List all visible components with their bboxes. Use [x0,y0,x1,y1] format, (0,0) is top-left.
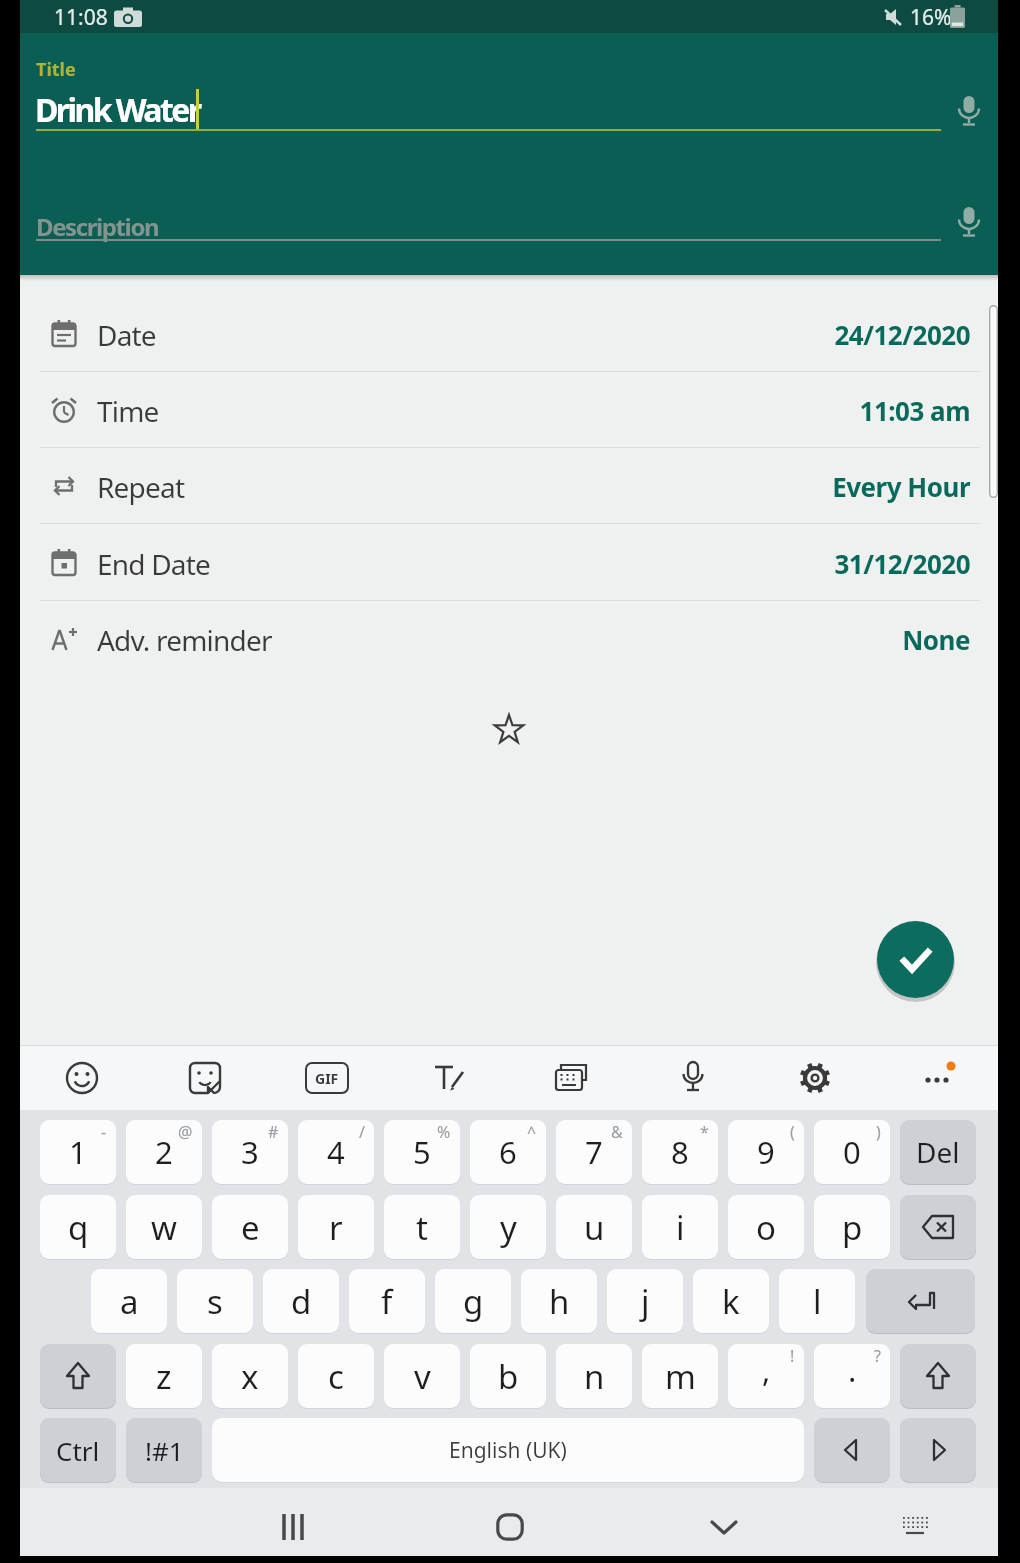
button[interactable]: !#1 [126,1418,202,1482]
staticText: ! [790,1345,795,1367]
button[interactable]: , [728,1344,804,1408]
button[interactable]: 8 [642,1120,718,1184]
button[interactable]: i [642,1195,718,1259]
button[interactable]: p [814,1195,890,1259]
button[interactable] [255,1498,335,1556]
button[interactable] [900,1195,976,1259]
button[interactable]: d [263,1269,339,1333]
staticText: 8 [671,1131,689,1173]
button[interactable] [866,1269,975,1333]
staticText: 24/12/2020 [470,317,970,352]
button[interactable]: 9 [728,1120,804,1184]
button[interactable]: 6 [470,1120,546,1184]
staticText: Time [97,392,159,430]
staticText: w [151,1205,177,1250]
button[interactable]: 4 [298,1120,374,1184]
staticText: - [101,1121,107,1143]
staticText: 6 [499,1131,517,1173]
button[interactable]: n [556,1344,632,1408]
staticText: h [549,1279,570,1324]
button[interactable] [470,1498,550,1556]
button[interactable] [684,1498,764,1556]
staticText: 2 [155,1131,173,1173]
button[interactable]: Repeat [20,448,998,524]
button[interactable]: . [814,1344,890,1408]
staticText: ^ [527,1121,537,1143]
button[interactable] [900,1418,976,1482]
button[interactable]: k [693,1269,769,1333]
button[interactable]: s [177,1269,253,1333]
button[interactable]: o [728,1195,804,1259]
button[interactable]: z [126,1344,202,1408]
button[interactable] [940,81,998,141]
staticText: End Date [97,545,211,583]
button[interactable]: e [212,1195,288,1259]
staticText: g [463,1279,484,1324]
button[interactable] [632,1046,754,1110]
staticText: c [328,1354,344,1399]
button[interactable]: Del [900,1120,976,1184]
button[interactable]: q [40,1195,116,1259]
button[interactable]: f [349,1269,425,1333]
button[interactable]: GIF [266,1046,388,1110]
button[interactable]: w [126,1195,202,1259]
button[interactable]: x [212,1344,288,1408]
staticText: j [641,1279,650,1324]
staticText: 4 [327,1131,345,1173]
staticText: a [120,1279,139,1324]
button[interactable]: b [470,1344,546,1408]
staticText: y [500,1205,517,1250]
staticText: u [584,1205,605,1250]
button[interactable]: j [607,1269,683,1333]
button[interactable] [940,193,998,251]
button[interactable]: u [556,1195,632,1259]
staticText: % [437,1121,451,1143]
button[interactable] [754,1046,876,1110]
button[interactable] [40,1344,116,1408]
button[interactable]: Ctrl [40,1418,116,1482]
button[interactable]: 0 [814,1120,890,1184]
button[interactable]: 5 [384,1120,460,1184]
button[interactable]: t [384,1195,460,1259]
staticText: m [665,1354,696,1399]
button[interactable] [814,1418,890,1482]
button[interactable] [876,1046,998,1110]
button[interactable]: End Date [20,525,998,601]
staticText: x [241,1354,259,1399]
button[interactable]: c [298,1344,374,1408]
button[interactable]: v [384,1344,460,1408]
button[interactable]: r [298,1195,374,1259]
staticText: Repeat [97,468,185,506]
staticText: d [291,1279,312,1324]
staticText: Del [916,1133,960,1171]
button[interactable] [877,921,954,998]
button[interactable] [875,1498,955,1556]
button[interactable]: g [435,1269,511,1333]
staticText: b [498,1354,519,1399]
button[interactable] [388,1046,510,1110]
button[interactable]: y [470,1195,546,1259]
staticText: 11:08 [54,3,108,32]
button[interactable]: a [91,1269,167,1333]
button[interactable]: 7 [556,1120,632,1184]
button[interactable]: Time [20,372,998,448]
staticText: ? [874,1345,881,1367]
button[interactable]: m [642,1344,718,1408]
button[interactable] [900,1344,976,1408]
button[interactable]: 3 [212,1120,288,1184]
button[interactable]: English (UK) [212,1418,804,1482]
staticText: r [329,1205,343,1250]
button[interactable]: h [521,1269,597,1333]
button[interactable] [143,1046,266,1110]
button[interactable] [20,1046,143,1110]
button[interactable]: Adv. reminder [20,601,998,677]
button[interactable]: 2 [126,1120,202,1184]
staticText: Title [36,57,76,82]
button[interactable]: Date [20,296,998,372]
staticText: @ [178,1121,193,1143]
button[interactable] [510,1046,632,1110]
button[interactable]: l [779,1269,855,1333]
staticText: e [241,1205,260,1250]
staticText: 1 [69,1131,87,1173]
button[interactable]: 1 [40,1120,116,1184]
